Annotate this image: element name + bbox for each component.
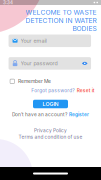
button[interactable]: Privacy Policy [34, 128, 67, 133]
staticText: Remember Me [18, 78, 51, 84]
staticText: Terms and condition of use [18, 134, 82, 140]
button[interactable]: Terms and condition of use [18, 134, 82, 140]
staticText: 3:34 [3, 0, 13, 5]
button[interactable]: Reset it [74, 88, 95, 93]
staticText: Register [69, 112, 89, 117]
staticText: LOGIN [42, 101, 58, 107]
staticText: Your password [20, 60, 57, 67]
button[interactable]: Your email [8, 34, 91, 47]
button[interactable]: Register [67, 112, 89, 117]
button[interactable]: Remember Me [10, 78, 92, 84]
button[interactable]: Your password [8, 57, 91, 70]
staticText: Your email [20, 38, 46, 44]
staticText: WELCOME TO WASTE DETECTION IN WATER BODI… [25, 8, 96, 33]
staticText: Forgot password? [31, 88, 74, 93]
staticText: Privacy Policy [34, 128, 67, 133]
staticText: Don't have an account? [12, 112, 67, 117]
staticText: Reset it [77, 88, 95, 93]
button[interactable]: LOGIN [33, 100, 68, 108]
